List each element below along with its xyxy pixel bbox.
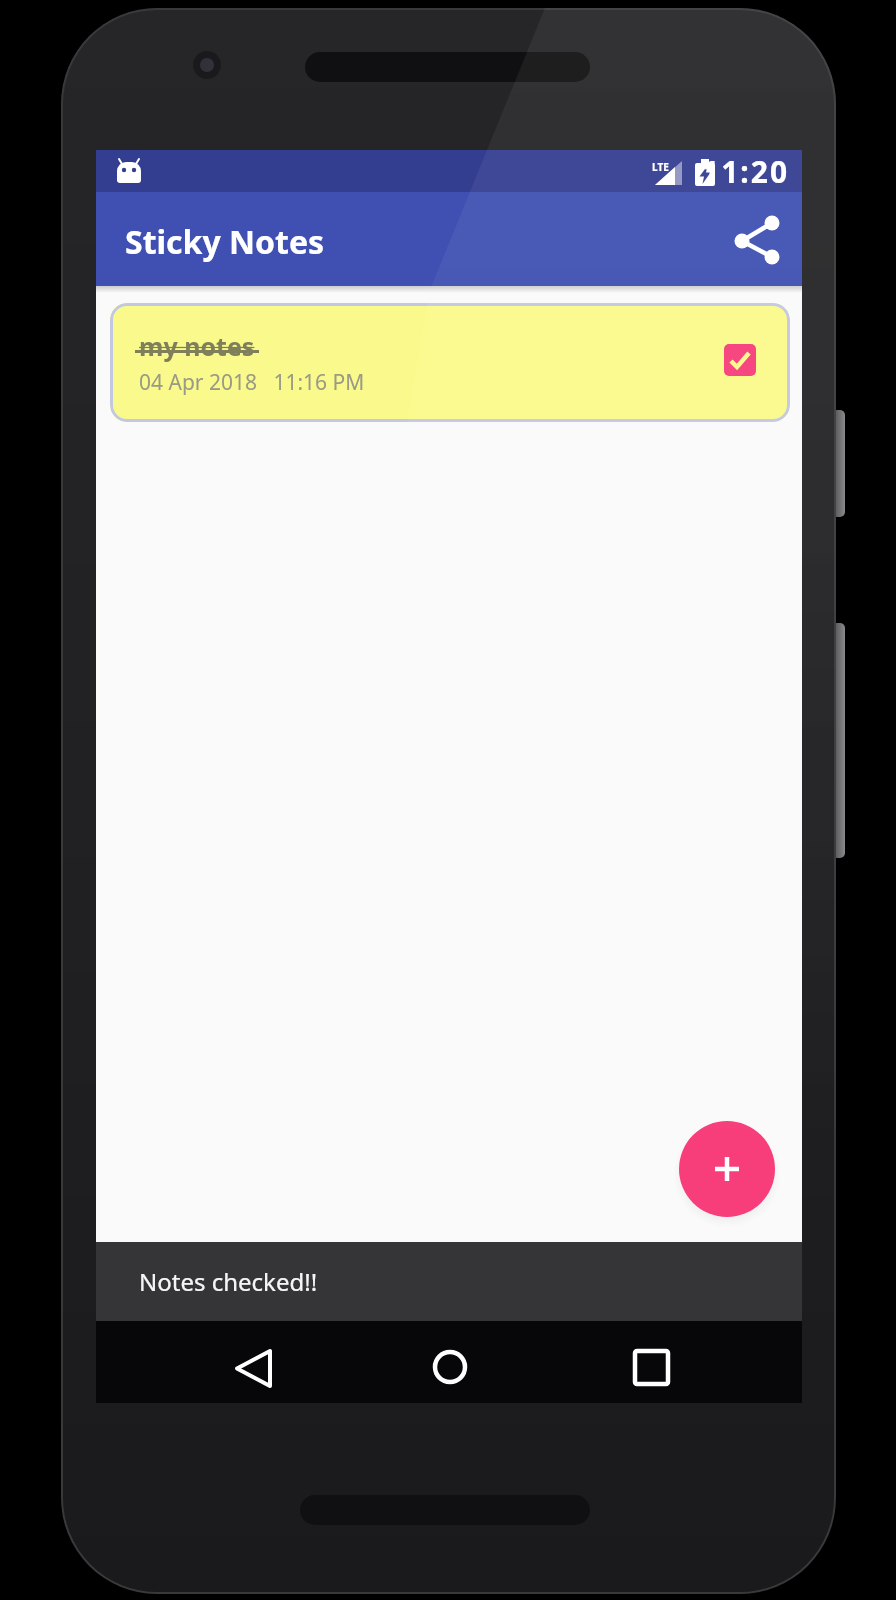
button[interactable]: [226, 1342, 278, 1394]
staticText: LTE: [652, 160, 669, 174]
staticText: Sticky Notes: [125, 220, 325, 264]
button[interactable]: [679, 1121, 775, 1217]
staticText: 11:20: [702, 151, 790, 192]
button[interactable]: [625, 1342, 677, 1394]
staticText: my notes: [139, 329, 255, 363]
staticText: Notes checked!!: [139, 1265, 318, 1298]
staticText: 04 Apr 2018 11:16 PM: [139, 368, 365, 397]
button[interactable]: my notes: [110, 303, 790, 422]
button[interactable]: [724, 344, 756, 376]
button[interactable]: [733, 215, 781, 263]
button[interactable]: [424, 1341, 476, 1393]
